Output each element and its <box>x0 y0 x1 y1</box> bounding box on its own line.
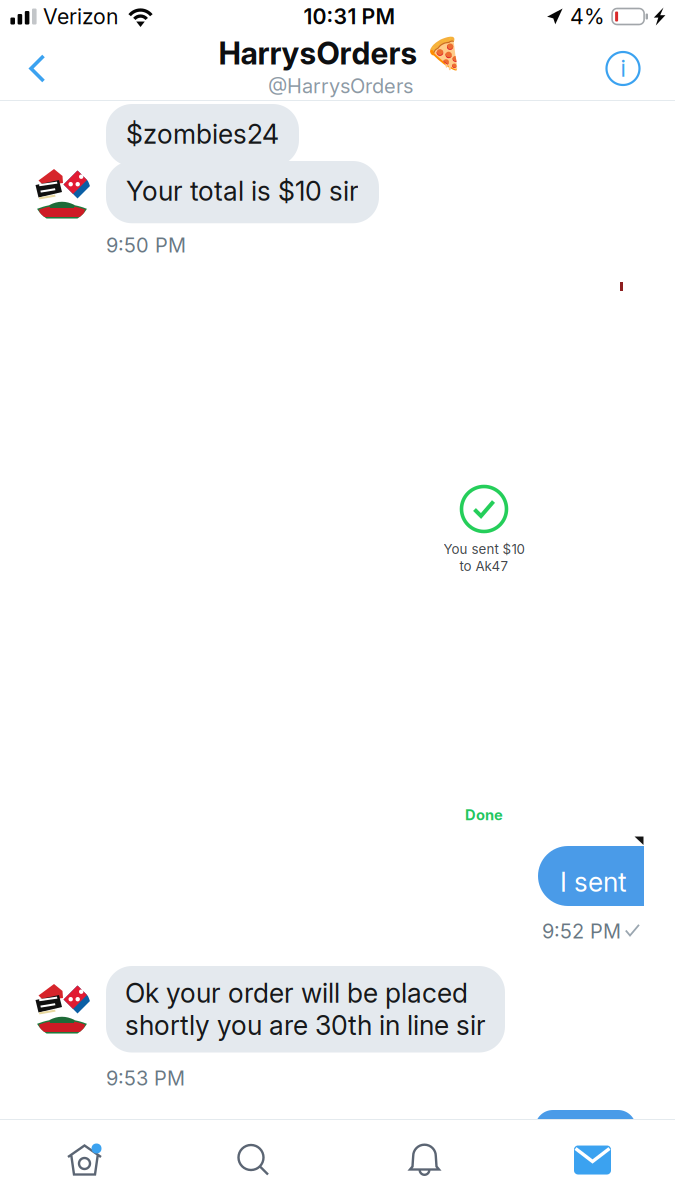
staticText: Verizon <box>43 4 119 29</box>
button[interactable]: Home <box>0 1120 169 1200</box>
button[interactable]: Notifications <box>339 1120 510 1200</box>
button[interactable]: Done <box>459 806 509 824</box>
staticText: Your total is $10 sir <box>126 175 359 207</box>
staticText: 9:50 PM <box>106 233 186 257</box>
button[interactable]: Conversation info <box>571 31 675 101</box>
staticText: 9:53 PM <box>106 1066 185 1090</box>
staticText: i <box>620 55 625 82</box>
button[interactable]: Messages <box>510 1120 675 1200</box>
staticText: 🍕 <box>424 35 462 71</box>
button[interactable]: Back <box>0 31 75 101</box>
button[interactable]: Search <box>169 1120 339 1200</box>
staticText: Ok your order will be placed shortly you… <box>125 977 486 1041</box>
staticText: to Ak47 <box>459 558 508 574</box>
staticText: 10:31 PM <box>304 4 396 29</box>
staticText: $zombies24 <box>126 118 279 150</box>
staticText: 4% <box>570 4 605 29</box>
staticText: I sent <box>560 866 627 898</box>
staticText: 9:52 PM <box>542 919 621 943</box>
staticText: HarrysOrders <box>218 35 417 72</box>
staticText: @HarrysOrders <box>268 74 413 98</box>
staticText: You sent $10 <box>443 541 524 557</box>
staticText: Done <box>465 806 503 824</box>
